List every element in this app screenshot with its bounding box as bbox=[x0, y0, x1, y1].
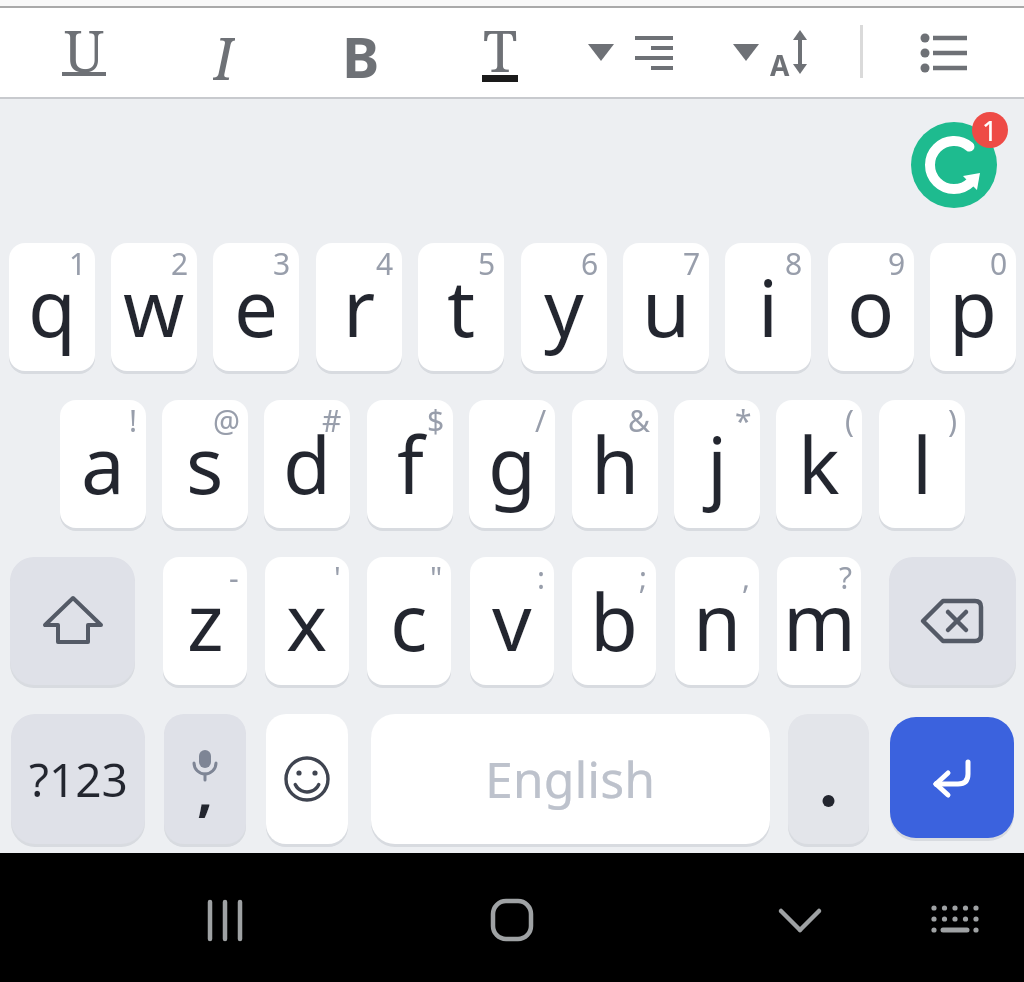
button[interactable]: s bbox=[162, 400, 248, 528]
staticText: h bbox=[591, 411, 640, 517]
button[interactable]: n bbox=[675, 557, 759, 685]
button[interactable]: I bbox=[196, 18, 252, 88]
staticText: 8 bbox=[785, 243, 803, 284]
staticText: ! bbox=[129, 400, 138, 441]
staticText: 1 bbox=[69, 243, 87, 284]
button[interactable]: b bbox=[572, 557, 656, 685]
button[interactable] bbox=[472, 880, 552, 960]
staticText: ? bbox=[839, 557, 853, 598]
staticText: a bbox=[81, 411, 125, 517]
button[interactable] bbox=[788, 714, 869, 844]
button[interactable]: q bbox=[9, 243, 95, 371]
staticText: U bbox=[64, 12, 105, 82]
staticText: p bbox=[949, 254, 997, 360]
button[interactable]: y bbox=[521, 243, 607, 371]
staticText: T bbox=[483, 12, 518, 82]
staticText: - bbox=[229, 557, 239, 598]
button[interactable]: v bbox=[470, 557, 554, 685]
button[interactable]: T bbox=[472, 18, 528, 88]
button[interactable] bbox=[185, 880, 265, 960]
staticText: , bbox=[742, 557, 751, 598]
staticText: k bbox=[798, 411, 840, 517]
staticText: @ bbox=[213, 400, 240, 441]
staticText: 0 bbox=[990, 243, 1008, 284]
button[interactable]: c bbox=[367, 557, 451, 685]
staticText: I bbox=[213, 18, 235, 88]
staticText: 6 bbox=[581, 243, 599, 284]
staticText: n bbox=[693, 568, 742, 674]
staticText: s bbox=[186, 411, 224, 517]
button[interactable]: B bbox=[333, 18, 389, 88]
staticText: ' bbox=[334, 557, 341, 598]
staticText: l bbox=[912, 411, 933, 517]
staticText: d bbox=[283, 411, 331, 517]
button[interactable]: w bbox=[111, 243, 197, 371]
staticText: A bbox=[770, 46, 790, 84]
staticText: * bbox=[735, 400, 752, 441]
staticText: 7 bbox=[683, 243, 701, 284]
staticText: # bbox=[322, 400, 342, 441]
staticText: " bbox=[430, 557, 443, 598]
button[interactable]: i bbox=[725, 243, 811, 371]
button[interactable]: r bbox=[316, 243, 402, 371]
button[interactable] bbox=[890, 717, 1014, 838]
staticText: v bbox=[492, 568, 532, 674]
button[interactable]: o bbox=[828, 243, 914, 371]
button[interactable]: f bbox=[367, 400, 453, 528]
button[interactable] bbox=[760, 880, 840, 960]
button[interactable]: U bbox=[56, 18, 112, 88]
button[interactable]: u bbox=[623, 243, 709, 371]
button[interactable]: g bbox=[469, 400, 555, 528]
staticText: w bbox=[123, 254, 185, 360]
staticText: i bbox=[758, 254, 779, 360]
button[interactable]: x bbox=[265, 557, 349, 685]
button[interactable]: h bbox=[572, 400, 658, 528]
staticText: ?123 bbox=[29, 748, 128, 811]
button[interactable]: a bbox=[60, 400, 146, 528]
staticText: z bbox=[187, 568, 224, 674]
staticText: j bbox=[707, 411, 728, 517]
button[interactable] bbox=[10, 557, 135, 685]
button[interactable]: p bbox=[930, 243, 1016, 371]
button[interactable] bbox=[911, 122, 997, 208]
staticText: m bbox=[783, 568, 856, 674]
staticText: 1 bbox=[982, 112, 998, 148]
button[interactable]: j bbox=[674, 400, 760, 528]
button[interactable] bbox=[889, 557, 1016, 685]
staticText: ) bbox=[948, 400, 957, 441]
button[interactable]: l bbox=[879, 400, 965, 528]
staticText: y bbox=[544, 254, 584, 360]
button[interactable]: A bbox=[720, 18, 830, 88]
button[interactable]: e bbox=[213, 243, 299, 371]
staticText: e bbox=[234, 254, 278, 360]
staticText: B bbox=[342, 18, 380, 88]
staticText: b bbox=[590, 568, 638, 674]
staticText: , bbox=[197, 751, 213, 827]
staticText: English bbox=[485, 745, 656, 813]
button[interactable]: English bbox=[371, 714, 770, 844]
staticText: 9 bbox=[888, 243, 906, 284]
button[interactable] bbox=[915, 880, 995, 960]
staticText: c bbox=[390, 568, 428, 674]
staticText: 3 bbox=[273, 243, 291, 284]
staticText: / bbox=[535, 400, 547, 441]
button[interactable] bbox=[905, 18, 985, 88]
button[interactable]: d bbox=[264, 400, 350, 528]
button[interactable]: m bbox=[777, 557, 861, 685]
staticText: f bbox=[397, 411, 424, 517]
button[interactable]: k bbox=[776, 400, 862, 528]
button[interactable]: , bbox=[164, 714, 246, 844]
staticText: q bbox=[28, 254, 76, 360]
button[interactable]: ?123 bbox=[11, 714, 145, 844]
button[interactable]: z bbox=[163, 557, 247, 685]
staticText: g bbox=[488, 411, 536, 517]
staticText: : bbox=[537, 557, 546, 598]
staticText: o bbox=[847, 254, 895, 360]
staticText: ; bbox=[639, 557, 648, 598]
staticText: 4 bbox=[376, 243, 394, 284]
staticText: & bbox=[628, 400, 650, 441]
staticText: ( bbox=[845, 400, 854, 441]
button[interactable] bbox=[575, 18, 685, 88]
button[interactable] bbox=[266, 714, 348, 844]
button[interactable]: t bbox=[418, 243, 504, 371]
